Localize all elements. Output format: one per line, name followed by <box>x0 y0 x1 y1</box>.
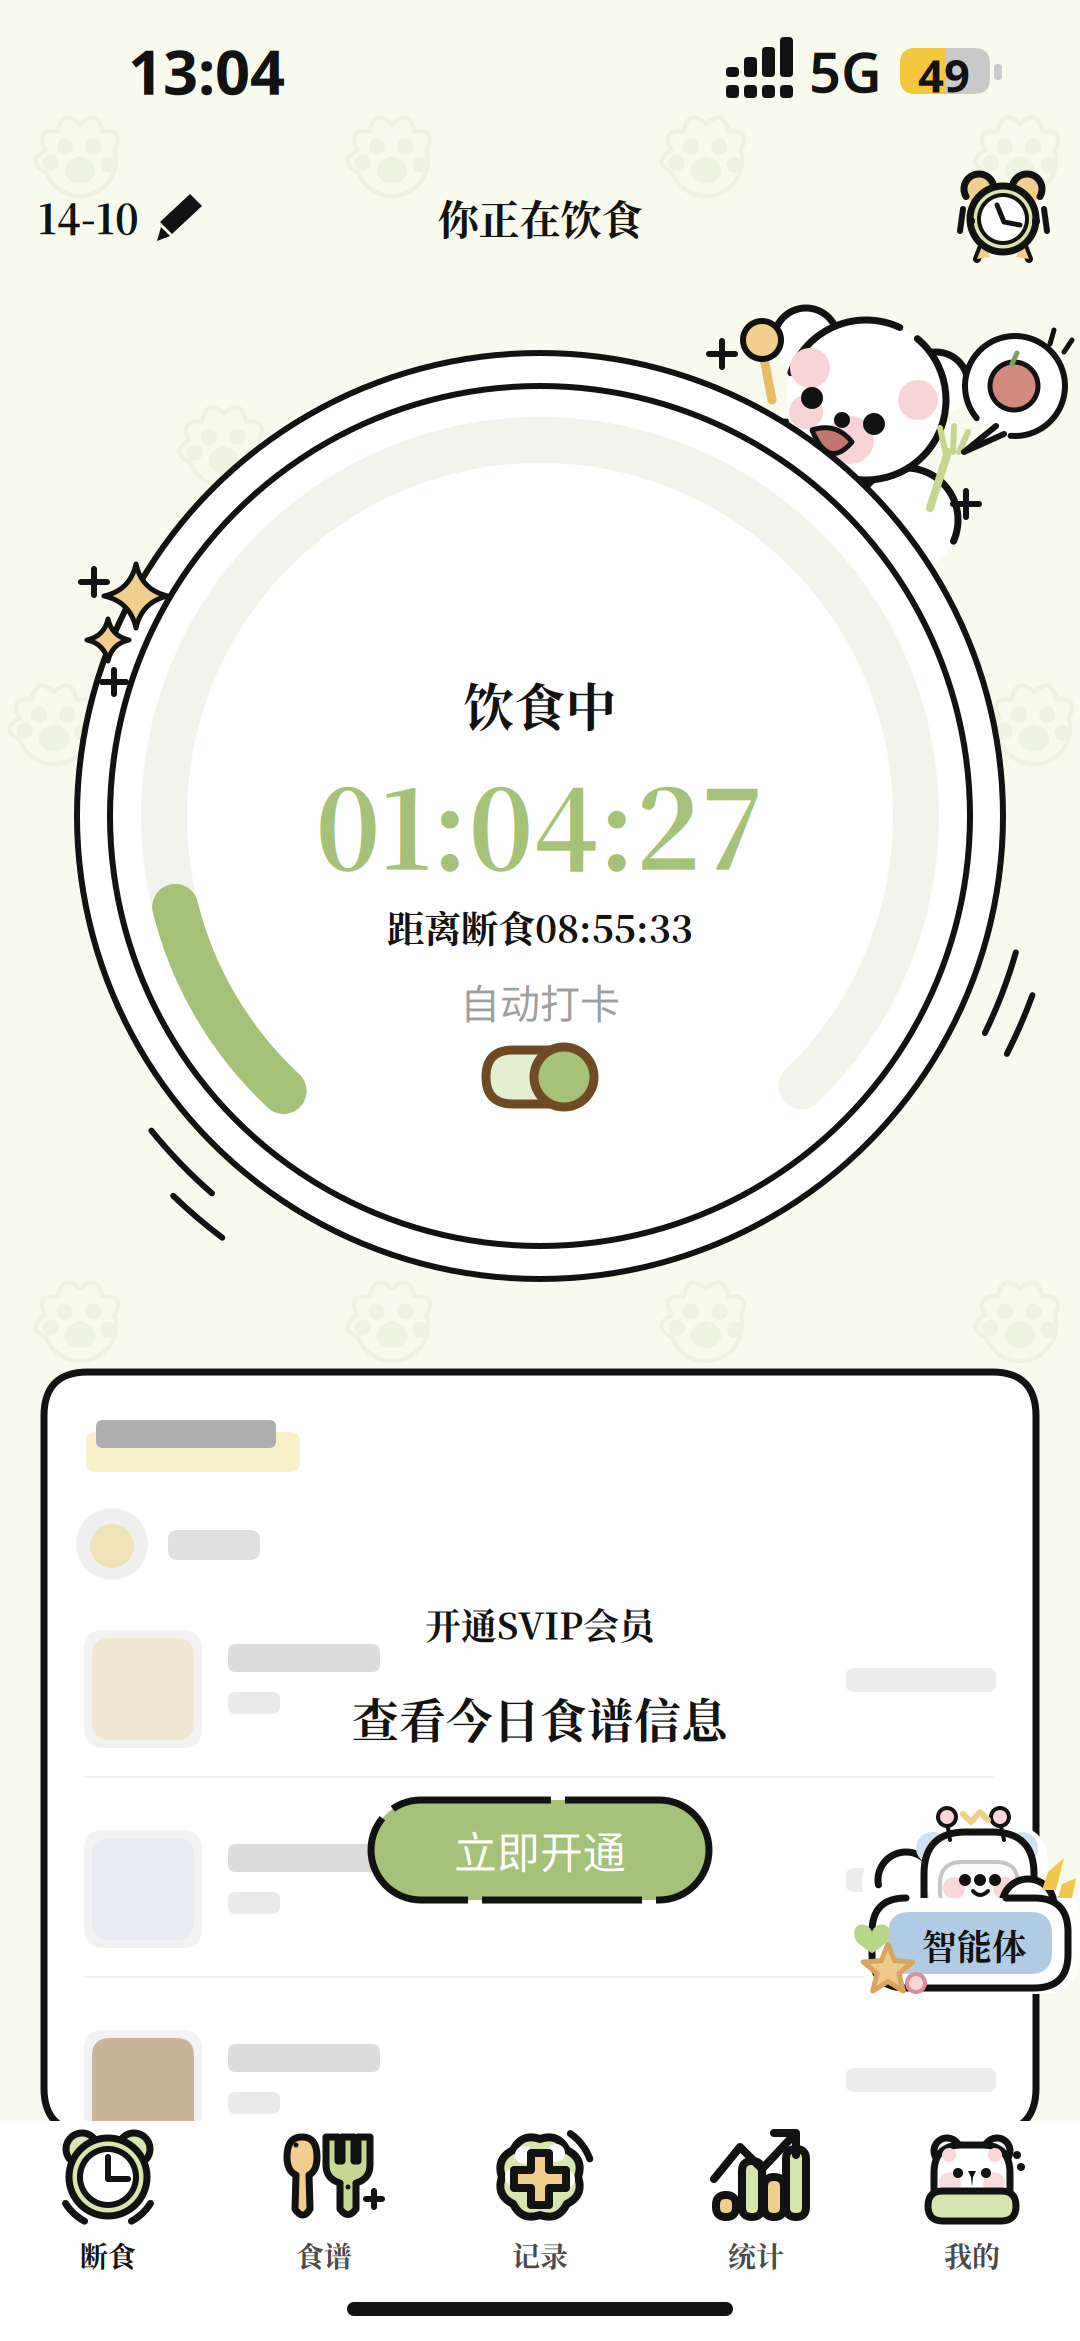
button[interactable]: 记录 <box>432 2121 648 2341</box>
staticText: 查看今日食谱信息 <box>352 1684 728 1751</box>
staticText: 49 <box>918 45 970 105</box>
staticText: 智能体 <box>922 1920 1027 1970</box>
staticText: 记录 <box>512 2235 568 2275</box>
staticText: 断食 <box>80 2235 136 2275</box>
button[interactable]: 食谱 <box>216 2121 432 2341</box>
staticText: 立即开通 <box>454 1819 626 1881</box>
staticText: 开通SVIP会员 <box>425 1598 655 1650</box>
button[interactable]: 自动打卡开关 <box>478 1042 602 1114</box>
staticText: 统计 <box>728 2235 784 2275</box>
staticText: 5G <box>809 34 882 108</box>
button[interactable]: 14-10 <box>28 174 215 260</box>
staticText: 你正在饮食 <box>437 187 642 247</box>
button[interactable]: 闹钟提醒 <box>948 161 1060 273</box>
staticText: 饮食中 <box>463 668 616 741</box>
staticText: 自动打卡 <box>460 972 620 1030</box>
staticText: 我的 <box>944 2235 1000 2275</box>
button[interactable]: 断食 <box>0 2121 216 2341</box>
button[interactable]: 统计 <box>648 2121 864 2341</box>
staticText: 14-10 <box>38 188 139 246</box>
staticText: 食谱 <box>296 2235 352 2275</box>
button[interactable]: 立即开通 <box>371 1800 709 1900</box>
staticText: 01:04:27 <box>315 744 764 901</box>
button[interactable]: 我的 <box>864 2121 1080 2341</box>
staticText: 距离断食08:55:33 <box>387 900 693 954</box>
staticText: 13:04 <box>128 30 285 112</box>
